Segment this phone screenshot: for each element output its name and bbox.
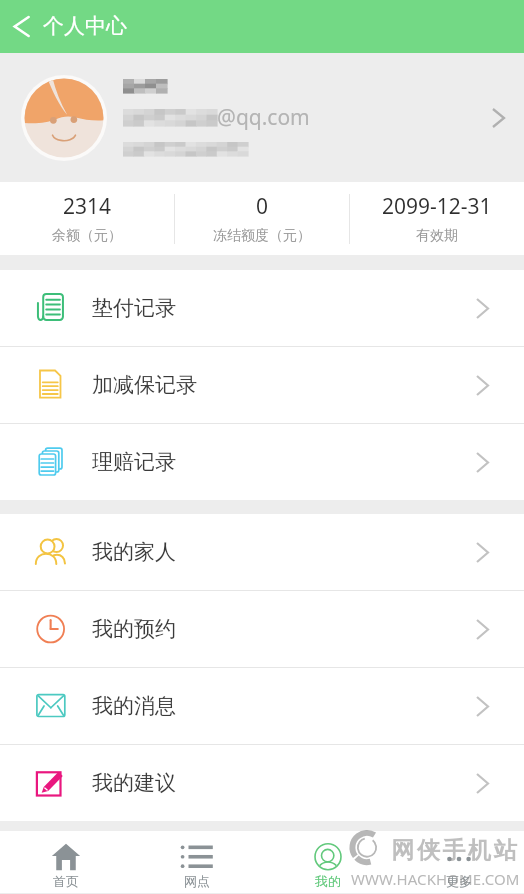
staticText: 2099-12-31 [382,192,492,221]
staticText: 个人中心 [43,13,127,39]
button[interactable]: 网点 [131,831,262,893]
staticText: 加减保记录 [92,372,197,398]
staticText: 我的 [315,873,341,889]
button[interactable]: @qq.com [0,53,524,182]
staticText: 理赔记录 [92,449,176,475]
button[interactable]: 更多 [393,831,524,893]
staticText: 我的建议 [92,770,176,796]
staticText: 冻结额度（元） [213,227,311,245]
button[interactable]: 我的消息 [0,668,524,744]
staticText: 网侠手机站 [390,836,518,865]
staticText: 网点 [184,873,210,889]
button[interactable]: 2099-12-31 [350,182,524,255]
staticText: WWW.HACKHOME.COM [351,869,520,889]
staticText: 我的预约 [92,616,176,642]
button[interactable]: 加减保记录 [0,347,524,423]
staticText: 我的消息 [92,693,176,719]
staticText: 余额（元） [52,227,122,245]
staticText: 0 [256,192,269,221]
button[interactable]: 理赔记录 [0,424,524,500]
button[interactable]: 2314 [0,182,174,255]
staticText: 有效期 [416,227,458,245]
staticText: 更多 [446,873,472,889]
staticText: 2314 [63,192,112,221]
button[interactable]: 我的 [262,831,393,893]
button[interactable]: 首页 [0,831,131,893]
button[interactable]: 我的建议 [0,745,524,821]
button[interactable]: 我的预约 [0,591,524,667]
button[interactable]: 垫付记录 [0,270,524,346]
staticText: 垫付记录 [92,295,176,321]
button[interactable]: 0 [175,182,349,255]
staticText: 我的家人 [92,539,176,565]
button[interactable]: Back [0,0,42,53]
staticText: @qq.com [217,103,310,132]
button[interactable]: 我的家人 [0,514,524,590]
staticText: 首页 [53,873,79,889]
